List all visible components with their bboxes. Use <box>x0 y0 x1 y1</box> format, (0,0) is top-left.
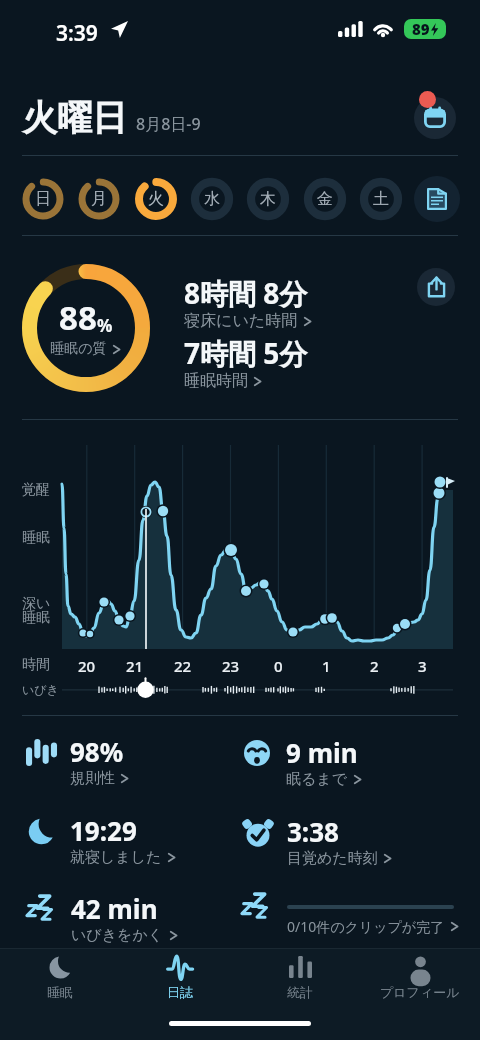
staticText: 睡眠 <box>22 529 50 547</box>
button[interactable]: Calendar <box>414 97 456 139</box>
staticText: 7時間 5分 <box>184 334 308 372</box>
button[interactable]: 土 <box>358 176 404 222</box>
staticText: 木 <box>260 189 276 209</box>
staticText: 9 min <box>286 735 358 770</box>
button[interactable]: 水 <box>189 176 235 222</box>
staticText: 8月8日-9 <box>136 113 201 135</box>
staticText: 3:38 <box>287 814 339 849</box>
staticText: 2 <box>370 656 379 676</box>
button[interactable]: 0/10件のクリップが完了 <box>240 881 472 939</box>
staticText: 火曜日 <box>22 96 127 140</box>
button[interactable]: 9 min <box>239 725 453 781</box>
staticText: 88 <box>59 295 97 340</box>
button[interactable]: 月 <box>76 176 122 222</box>
staticText: 睡眠の質 <box>50 340 107 358</box>
staticText: 0/10件のクリップが完了 <box>287 917 445 936</box>
button[interactable]: プロフィール <box>372 953 468 1005</box>
staticText: 時間 <box>22 656 50 674</box>
button[interactable]: 日誌 <box>132 953 228 1005</box>
staticText: 金 <box>317 189 333 209</box>
staticText: 日 <box>35 189 51 209</box>
staticText: 22 <box>174 656 192 676</box>
staticText: 1 <box>322 656 331 676</box>
staticText: 0 <box>274 656 283 676</box>
staticText: 目覚めた時刻 <box>287 849 378 868</box>
staticText: いびき <box>22 682 59 697</box>
staticText: 就寝しました <box>70 848 162 867</box>
staticText: いびきをかく <box>71 926 164 945</box>
staticText: 統計 <box>287 984 313 1000</box>
staticText: % <box>97 314 113 337</box>
button[interactable]: 睡眠 <box>12 953 108 1005</box>
button[interactable]: 88 <box>22 264 150 392</box>
button[interactable]: Report <box>414 176 460 222</box>
button[interactable]: 日 <box>20 176 66 222</box>
staticText: 42 min <box>71 891 158 926</box>
staticText: 23 <box>222 656 240 676</box>
button[interactable]: 統計 <box>252 953 348 1005</box>
staticText: 土 <box>373 189 389 209</box>
button[interactable]: 7時間 5分 <box>184 334 308 392</box>
staticText: 規則性 <box>70 769 115 788</box>
staticText: 98% <box>70 734 124 769</box>
staticText: 89 <box>412 19 430 39</box>
staticText: 覚醒 <box>22 481 50 499</box>
button[interactable]: 金 <box>302 176 348 222</box>
button[interactable]: 3:38 <box>240 804 454 860</box>
staticText: 深い 睡眠 <box>22 595 51 626</box>
button[interactable]: 42 min <box>24 881 238 937</box>
staticText: 3:39 <box>56 19 98 48</box>
staticText: 日誌 <box>167 984 193 1000</box>
button[interactable]: 木 <box>245 176 291 222</box>
staticText: 眠るまで <box>286 770 348 789</box>
staticText: 8時間 8分 <box>184 274 308 312</box>
staticText: 睡眠 <box>47 984 73 1000</box>
button[interactable]: 19:29 <box>23 803 237 859</box>
staticText: 火 <box>148 189 164 209</box>
staticText: 睡眠時間 <box>184 371 248 391</box>
button[interactable]: 8時間 8分 <box>184 274 313 332</box>
button[interactable]: Share <box>417 268 455 306</box>
staticText: 水 <box>204 189 220 209</box>
staticText: 寝床にいた時間 <box>184 311 298 331</box>
staticText: プロフィール <box>380 984 460 1000</box>
button[interactable]: Play snoring audio <box>135 680 156 701</box>
staticText: 3 <box>418 656 427 676</box>
staticText: 21 <box>126 656 144 676</box>
staticText: 20 <box>78 656 96 676</box>
staticText: 19:29 <box>70 813 137 848</box>
button[interactable]: 火 <box>133 176 179 222</box>
button[interactable]: 98% <box>23 724 237 780</box>
staticText: 月 <box>91 189 107 209</box>
